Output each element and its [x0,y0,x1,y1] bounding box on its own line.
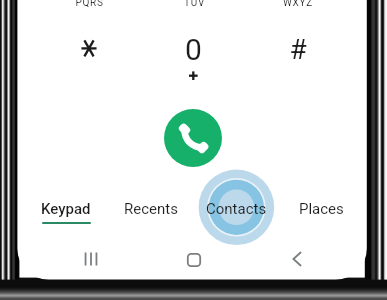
button[interactable]: Back [280,242,314,276]
staticText: TUV [184,0,205,9]
staticText: PQRS [75,0,104,9]
staticText: # [289,33,307,66]
button[interactable]: Recents [109,191,193,231]
button[interactable]: Keypad [24,191,108,231]
button[interactable]: Home [177,243,211,277]
button[interactable]: Recent apps [74,242,108,276]
button[interactable]: Contacts [194,191,278,231]
staticText: 0 [185,32,202,67]
button[interactable]: Call [164,109,222,167]
staticText: Contacts [206,200,267,218]
staticText: Keypad [41,200,91,218]
button[interactable]: Places [279,191,363,231]
staticText: Places [299,200,344,218]
staticText: Recents [124,200,178,218]
staticText: WXYZ [283,0,313,9]
